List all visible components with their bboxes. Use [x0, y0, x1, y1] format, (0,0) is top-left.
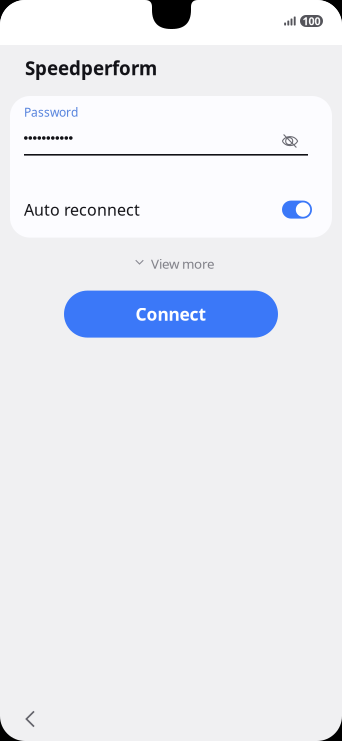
staticText: Auto reconnect: [24, 199, 140, 220]
staticText: View more: [151, 255, 215, 272]
staticText: Connect: [135, 303, 206, 326]
button[interactable]: Show password: [277, 124, 303, 152]
button[interactable]: Back: [13, 702, 47, 736]
button[interactable]: View more: [119, 253, 223, 275]
staticText: 100: [302, 14, 320, 28]
staticText: Password: [24, 104, 78, 120]
button[interactable]: Auto reconnect: [282, 201, 312, 219]
staticText: Speedperform: [25, 56, 157, 80]
button[interactable]: Connect: [64, 291, 278, 338]
